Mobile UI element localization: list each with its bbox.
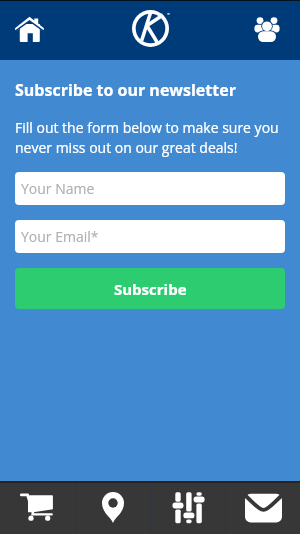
staticText: Fill out the form below to make sure you… <box>15 118 285 157</box>
button[interactable]: Home <box>7 8 51 52</box>
button[interactable]: Settings <box>151 481 225 534</box>
button[interactable]: Your Name <box>15 172 285 205</box>
button[interactable]: Your Email* <box>15 220 285 253</box>
button[interactable]: Cart <box>0 481 75 534</box>
staticText: Subscribe to our newsletter <box>15 79 236 101</box>
button[interactable]: Subscribe <box>15 268 285 309</box>
button[interactable]: Location <box>76 481 150 534</box>
staticText: Your Name <box>21 179 95 198</box>
button[interactable]: Mail <box>226 481 300 534</box>
staticText: Subscribe <box>114 279 187 299</box>
staticText: Your Email* <box>21 227 99 246</box>
button[interactable]: Logo <box>128 6 172 50</box>
button[interactable]: Account <box>245 7 289 51</box>
